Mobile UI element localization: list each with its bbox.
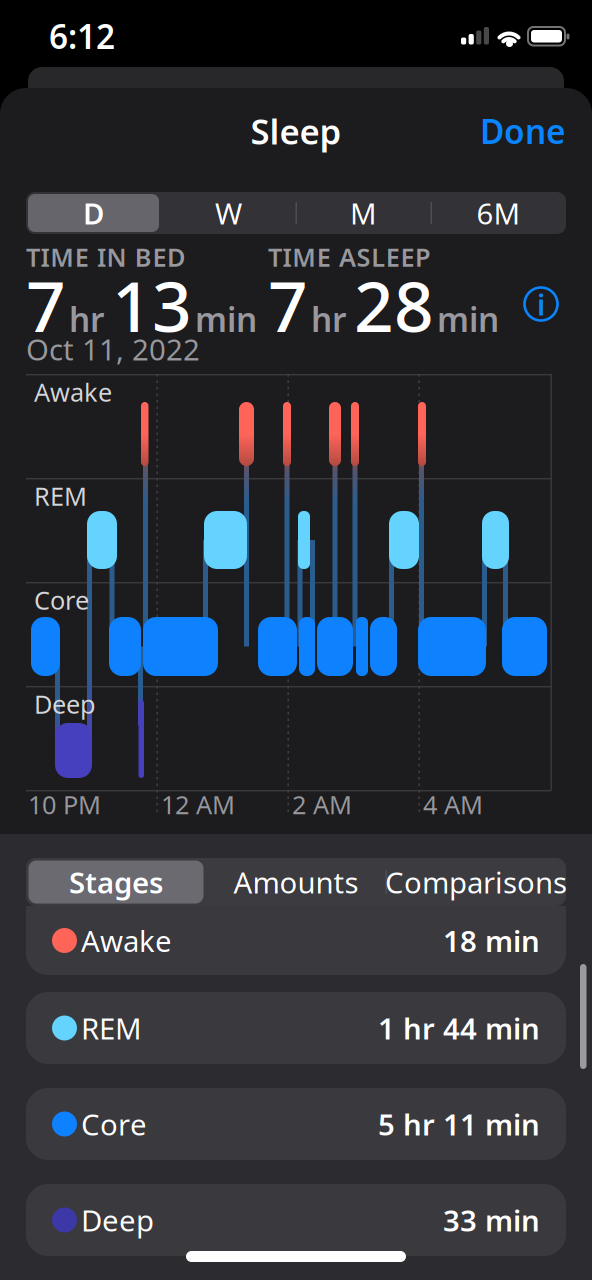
staticText: Awake: [34, 375, 112, 409]
staticText: Oct 11, 2022: [26, 329, 200, 368]
button[interactable]: Comparisons: [386, 858, 566, 906]
staticText: 12 AM: [161, 788, 235, 821]
staticText: 5 hr 11 min: [378, 1104, 540, 1143]
staticText: Comparisons: [385, 862, 567, 901]
button[interactable]: Awake: [26, 906, 566, 975]
staticText: W: [215, 193, 242, 232]
staticText: 18 min: [443, 921, 540, 960]
staticText: Stages: [69, 862, 163, 901]
staticText: REM: [81, 1008, 142, 1047]
staticText: REM: [34, 479, 87, 513]
button[interactable]: Deep: [26, 1184, 566, 1256]
staticText: i: [537, 284, 545, 323]
button[interactable]: Amounts: [206, 858, 386, 906]
button[interactable]: Stages: [26, 858, 206, 906]
staticText: min: [195, 297, 257, 341]
staticText: 33 min: [443, 1200, 540, 1239]
staticText: 13: [112, 259, 192, 351]
staticText: 2 AM: [292, 788, 352, 821]
staticText: Sleep: [250, 108, 341, 154]
staticText: min: [437, 297, 499, 341]
button[interactable]: W: [161, 192, 296, 234]
staticText: Deep: [34, 687, 96, 721]
staticText: Amounts: [233, 862, 358, 901]
staticText: hr: [69, 297, 104, 341]
staticText: 6M: [476, 193, 520, 232]
staticText: 10 PM: [28, 788, 101, 821]
staticText: M: [350, 193, 377, 232]
staticText: 1 hr 44 min: [378, 1008, 540, 1047]
button[interactable]: D: [26, 192, 161, 234]
button[interactable]: Done: [420, 114, 566, 148]
staticText: 6:12: [49, 14, 115, 58]
staticText: Done: [480, 109, 566, 153]
button[interactable]: REM: [26, 992, 566, 1064]
staticText: Awake: [81, 921, 172, 960]
staticText: 28: [354, 259, 434, 351]
staticText: TIME ASLEEP: [268, 240, 431, 274]
staticText: TIME IN BED: [26, 240, 186, 274]
staticText: 7: [26, 259, 66, 351]
staticText: D: [83, 193, 104, 232]
button[interactable]: Core: [26, 1088, 566, 1160]
button[interactable]: i: [524, 287, 557, 320]
staticText: 4 AM: [423, 788, 483, 821]
button[interactable]: M: [296, 192, 431, 234]
staticText: Core: [81, 1104, 147, 1143]
button[interactable]: 6M: [431, 192, 566, 234]
staticText: 7: [268, 259, 308, 351]
staticText: hr: [311, 297, 346, 341]
staticText: Deep: [81, 1200, 154, 1239]
staticText: Core: [34, 583, 89, 617]
